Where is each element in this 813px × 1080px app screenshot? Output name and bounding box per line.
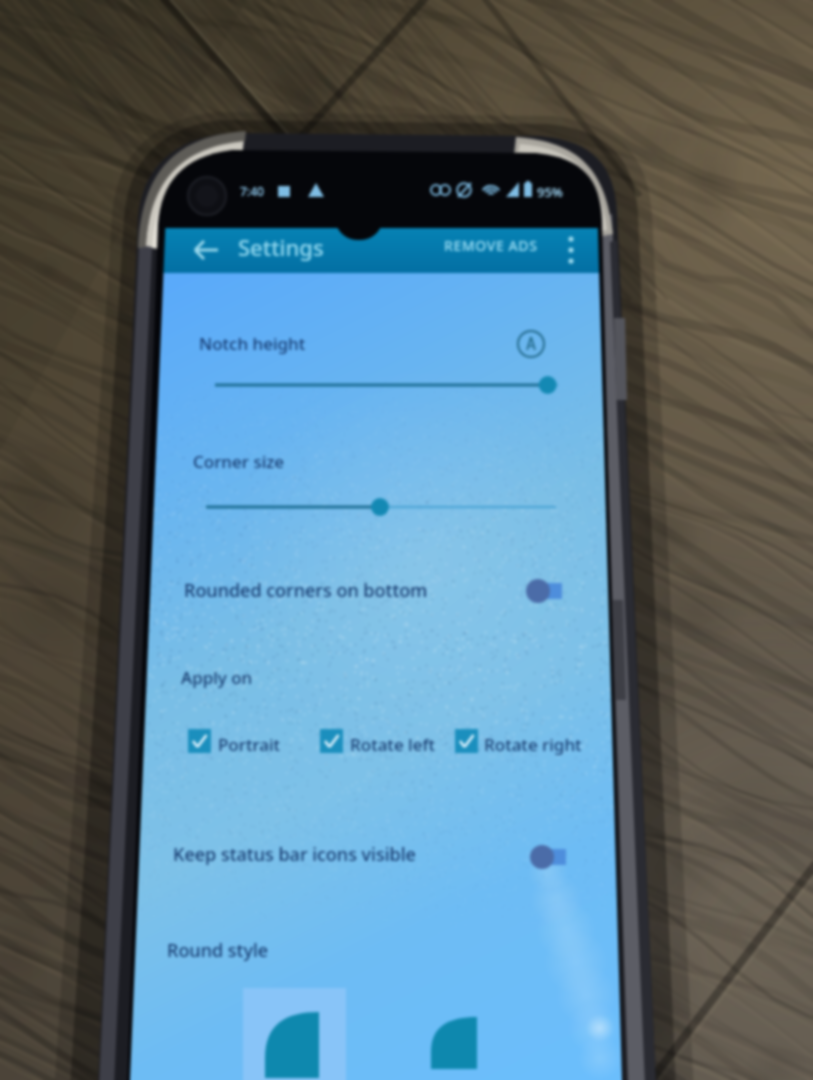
staticText: Corner size [193,450,285,473]
button[interactable]: Back [178,228,238,272]
staticText: Settings [238,232,324,262]
button[interactable]: Corner size [168,430,598,488]
button[interactable]: Rounded corners on bottom toggle [166,564,576,620]
staticText: Apply on [181,666,253,689]
staticText: 95% [537,183,563,201]
button[interactable]: More options [556,228,590,272]
staticText: 7:40 [240,183,264,199]
staticText: Round style [167,938,269,963]
button[interactable]: Round style option 1 [243,988,346,1080]
staticText: Portrait [218,733,281,756]
staticText: Keep status bar icons visible [173,842,416,867]
button[interactable]: Corner size slider [198,490,566,524]
staticText: Rotate right [484,733,582,756]
staticText: Notch height [199,332,306,355]
button[interactable]: Auto notch height [512,326,550,364]
staticText: Rounded corners on bottom [184,578,428,603]
button[interactable]: Keep status bar icons visible toggle [166,830,576,884]
staticText: REMOVE ADS [444,236,538,255]
button[interactable]: REMOVE ADS [434,230,556,270]
button[interactable]: Notch height slider [206,368,566,402]
button[interactable]: Notch height [170,310,600,370]
button[interactable]: Rotate left [318,724,440,760]
button[interactable]: Rotate right [452,724,580,760]
button[interactable]: Round style option 2 [420,1000,500,1080]
button[interactable]: Portrait [186,724,290,760]
staticText: Rotate left [350,733,435,756]
